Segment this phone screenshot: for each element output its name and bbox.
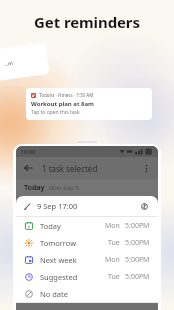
staticText: Mon Sep 9 (49, 184, 79, 192)
staticText: Suggested (40, 272, 78, 282)
staticText: Workout plan at 8am (31, 100, 94, 108)
button[interactable]: More options (139, 161, 153, 175)
staticText: Tue (108, 272, 120, 282)
staticText: 9 Sep 17:00 (37, 201, 78, 211)
staticText: 5:00PM (125, 272, 150, 282)
button[interactable]: Todoist · Fitness · 7:30 AM (26, 88, 152, 120)
staticText: Todoist · Fitness · 7:30 AM (39, 92, 94, 98)
staticText: Today (24, 183, 45, 193)
button[interactable]: Next week (16, 251, 158, 268)
staticText: No date (40, 289, 68, 299)
staticText: 10:00 (20, 148, 36, 156)
button[interactable]: Suggested (16, 268, 158, 285)
button[interactable]: Repeat (139, 201, 150, 212)
staticText: Tue (108, 238, 120, 248)
staticText: …m (4, 60, 14, 68)
staticText: Today (40, 221, 61, 231)
button[interactable]: Tomorrow (16, 234, 158, 251)
button[interactable]: Back (21, 161, 35, 175)
staticText: 5:00PM (125, 238, 150, 248)
staticText: Next week (40, 255, 77, 265)
staticText: Tap to open this task (31, 109, 80, 116)
button[interactable]: Today (16, 217, 158, 234)
staticText: Tomorrow (40, 238, 77, 248)
button[interactable]: 9 Sep 17:00 (16, 196, 158, 216)
button[interactable]: No date (16, 285, 158, 302)
staticText: 5:00PM (125, 221, 150, 231)
staticText: Get reminders (0, 12, 174, 32)
staticText: Mon (105, 255, 120, 265)
staticText: 5:00PM (125, 255, 150, 265)
staticText: Mon (105, 221, 120, 231)
staticText: 1 task selected (42, 163, 98, 174)
